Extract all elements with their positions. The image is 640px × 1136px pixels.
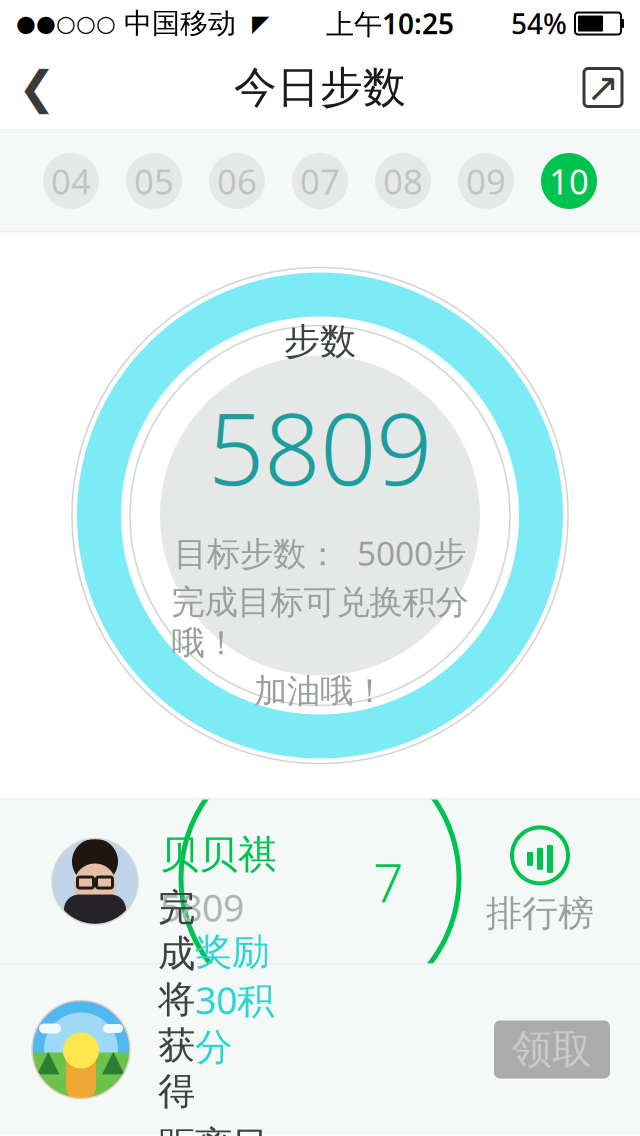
- staticText: 09: [466, 158, 506, 204]
- staticText: 中国移动: [116, 6, 252, 41]
- button[interactable]: 贝贝祺: [0, 831, 290, 932]
- staticText: 5809: [208, 382, 432, 513]
- staticText: ◤: [252, 11, 269, 36]
- staticText: ●●○○○: [16, 11, 116, 36]
- staticText: 加油哦！: [254, 671, 386, 712]
- button[interactable]: 10: [541, 153, 597, 209]
- button[interactable]: 领取: [494, 1020, 610, 1078]
- staticText: 04: [51, 158, 91, 204]
- staticText: 今日步数: [234, 61, 406, 114]
- staticText: 上午10:25: [326, 5, 454, 42]
- button[interactable]: 08: [375, 153, 431, 209]
- staticText: 06: [217, 158, 257, 204]
- staticText: 05: [134, 158, 174, 204]
- staticText: 10: [549, 158, 589, 204]
- button[interactable]: 05: [126, 153, 182, 209]
- button[interactable]: 06: [209, 153, 265, 209]
- staticText: 完成将获得: [158, 885, 195, 1114]
- staticText: 贝贝祺: [160, 831, 277, 878]
- staticText: ▲: [37, 1044, 60, 1077]
- staticText: 08: [383, 158, 423, 204]
- button[interactable]: 07: [292, 153, 348, 209]
- staticText: ▲: [102, 1044, 125, 1077]
- staticText: ↗: [586, 65, 620, 110]
- button[interactable]: 排行榜: [486, 827, 640, 936]
- staticText: 目标步数： 5000步: [174, 531, 466, 575]
- staticText: 排行榜: [486, 891, 594, 936]
- button[interactable]: Share: [566, 45, 640, 129]
- staticText: 奖励30积分: [195, 929, 274, 1070]
- staticText: 领取: [512, 1025, 592, 1074]
- staticText: ❮: [18, 62, 56, 113]
- staticText: 距离目标还有: [158, 1122, 269, 1136]
- staticText: 完成目标可兑换积分哦！: [171, 582, 468, 664]
- staticText: 5809: [160, 882, 244, 932]
- staticText: 7: [373, 846, 403, 917]
- button[interactable]: 09: [458, 153, 514, 209]
- staticText: 步数: [284, 319, 356, 363]
- button[interactable]: 04: [43, 153, 99, 209]
- button[interactable]: Back: [0, 45, 74, 129]
- staticText: 07: [300, 158, 340, 204]
- staticText: 54%: [511, 5, 567, 42]
